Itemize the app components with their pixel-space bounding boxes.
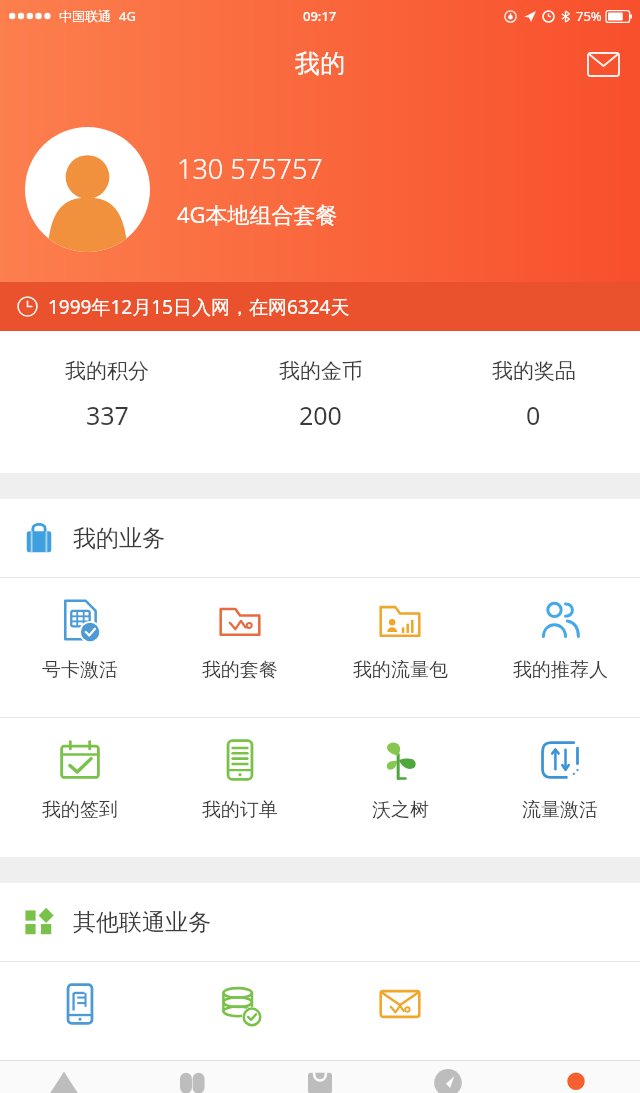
staticText: 4G本地组合套餐	[177, 199, 338, 229]
staticText: 0	[526, 398, 541, 432]
staticText: 流量激活	[522, 798, 598, 822]
button[interactable]: 我的	[512, 1061, 640, 1093]
button[interactable]: 我的订单	[160, 718, 320, 857]
button[interactable]: 商城	[256, 1061, 384, 1093]
button[interactable]: 发现	[384, 1061, 512, 1093]
staticText: 1999年12月15日入网，在网6324天	[48, 294, 350, 320]
staticText: 其他联通业务	[73, 908, 211, 937]
staticText: 337	[86, 398, 129, 432]
button[interactable]: 我的签到	[0, 718, 160, 857]
button[interactable]: 1999年12月15日入网，在网6324天	[0, 282, 640, 331]
button[interactable]: 我的金币	[214, 331, 427, 473]
button[interactable]: 130 575757	[0, 96, 640, 282]
button[interactable]: 我的业务	[0, 499, 640, 577]
button[interactable]: 我的套餐	[160, 578, 320, 717]
button[interactable]: 其他联通业务	[0, 883, 640, 961]
button[interactable]: Messages	[580, 41, 626, 87]
button[interactable]: 邮件	[320, 962, 480, 1057]
staticText: 我的订单	[202, 798, 278, 822]
button[interactable]: 我的推荐人	[480, 578, 640, 717]
staticText: 4G	[119, 7, 136, 25]
button[interactable]: 号卡激活	[0, 578, 160, 717]
staticText: 我的金币	[279, 358, 363, 384]
staticText: 130 575757	[177, 150, 323, 187]
button[interactable]: 我的积分	[0, 331, 214, 473]
staticText: 我的奖品	[492, 358, 576, 384]
button[interactable]: 服务	[128, 1061, 256, 1093]
button[interactable]: 我的流量包	[320, 578, 480, 717]
button[interactable]: 流量激活	[480, 718, 640, 857]
button[interactable]: 首页	[0, 1061, 128, 1093]
staticText: 09:17	[303, 7, 337, 25]
button[interactable]: 我的奖品	[427, 331, 640, 473]
staticText: 我的签到	[42, 798, 118, 822]
staticText: 沃之树	[372, 798, 429, 822]
staticText: 我的套餐	[202, 658, 278, 682]
staticText: 75%	[576, 7, 602, 25]
staticText: 号卡激活	[42, 658, 118, 682]
staticText: 我的	[295, 48, 345, 79]
staticText: 我的业务	[73, 524, 165, 553]
staticText: 我的积分	[65, 358, 149, 384]
staticText: 200	[299, 398, 342, 432]
staticText: 我的推荐人	[513, 658, 608, 682]
button[interactable]: 购物	[0, 962, 160, 1057]
staticText: 我的流量包	[353, 658, 448, 682]
staticText: 中国联通	[59, 8, 111, 24]
button[interactable]: 沃之树	[320, 718, 480, 857]
button[interactable]: 话费充值	[160, 962, 320, 1057]
